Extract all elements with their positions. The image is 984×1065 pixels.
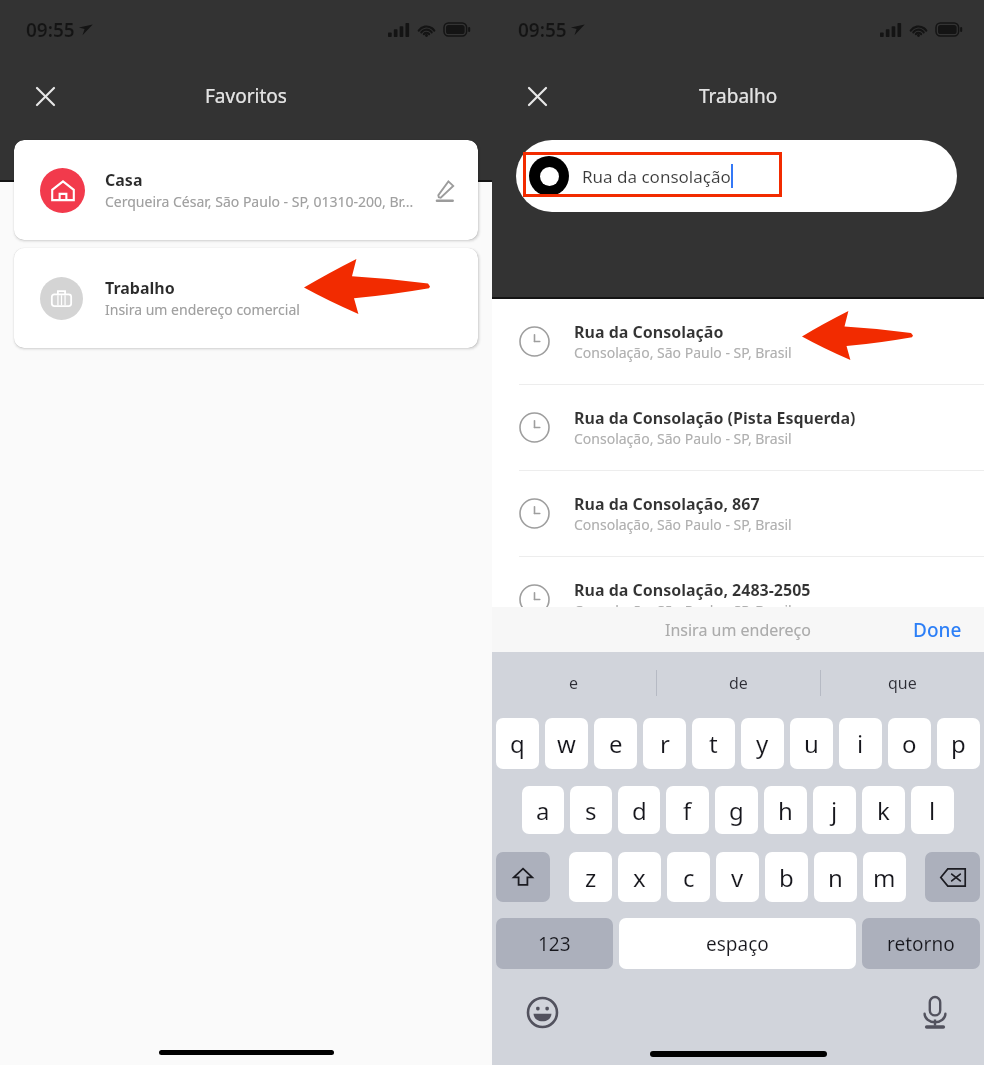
button[interactable]: j — [813, 786, 856, 834]
staticText: k — [877, 794, 890, 827]
staticText: t — [709, 727, 718, 760]
button[interactable]: e — [492, 652, 656, 713]
staticText: 09:55 — [26, 17, 75, 43]
button[interactable]: Emoji — [524, 994, 560, 1030]
button[interactable]: Rua da Consolação, 867 — [519, 471, 970, 556]
button[interactable]: 123 — [496, 918, 613, 969]
staticText: y — [756, 727, 769, 760]
staticText: Rua da consolação — [582, 165, 731, 188]
staticText: i — [857, 727, 864, 760]
button[interactable]: de — [657, 652, 820, 713]
button[interactable]: q — [496, 718, 539, 769]
staticText: u — [804, 727, 819, 760]
staticText: Casa — [105, 169, 143, 191]
staticText: s — [585, 794, 597, 827]
button[interactable]: u — [790, 718, 833, 769]
button[interactable]: w — [545, 718, 588, 769]
staticText: w — [557, 727, 576, 760]
button[interactable]: que — [821, 652, 984, 713]
button[interactable]: r — [643, 718, 686, 769]
staticText: Cerqueira César, São Paulo - SP, 01310-2… — [105, 192, 414, 211]
staticText: Trabalho — [699, 83, 778, 109]
staticText: h — [778, 794, 793, 827]
staticText: z — [585, 861, 597, 894]
button[interactable]: v — [716, 852, 759, 902]
button[interactable]: p — [937, 718, 980, 769]
button[interactable]: g — [715, 786, 758, 834]
button[interactable]: l — [911, 786, 954, 834]
button[interactable]: c — [667, 852, 710, 902]
staticText: Rua da Consolação, 2483-2505 — [574, 579, 811, 601]
button[interactable]: e — [594, 718, 637, 769]
button[interactable]: Rua da Consolação (Pista Esquerda) — [519, 385, 970, 470]
staticText: Consolação, São Paulo - SP, Brasil — [574, 515, 792, 534]
staticText: Insira um endereço — [665, 619, 811, 641]
staticText: Rua da Consolação (Pista Esquerda) — [574, 407, 856, 429]
staticText: retorno — [887, 931, 955, 957]
staticText: j — [831, 794, 838, 827]
button[interactable]: Fechar — [28, 79, 62, 113]
staticText: r — [660, 727, 670, 760]
button[interactable]: y — [741, 718, 784, 769]
staticText: de — [729, 672, 748, 694]
button[interactable]: Rua da Consolação, 2483-2505 — [519, 557, 970, 642]
staticText: q — [510, 727, 525, 760]
button[interactable]: o — [888, 718, 931, 769]
staticText: Rua da Consolação, 867 — [574, 493, 760, 515]
staticText: a — [536, 794, 550, 827]
staticText: o — [902, 727, 917, 760]
staticText: e — [609, 727, 623, 760]
button[interactable]: a — [522, 786, 564, 834]
button[interactable]: f — [666, 786, 709, 834]
staticText: Consolação, São Paulo - SP, Brasil — [574, 429, 792, 448]
staticText: f — [683, 794, 692, 827]
button[interactable]: s — [570, 786, 612, 834]
staticText: n — [828, 861, 843, 894]
button[interactable]: Casa — [14, 140, 478, 240]
button[interactable]: k — [862, 786, 905, 834]
button[interactable]: espaço — [619, 918, 856, 969]
button[interactable]: Apagar — [925, 852, 980, 902]
button[interactable]: Rua da consolação — [516, 140, 957, 212]
staticText: que — [888, 672, 917, 694]
button[interactable]: h — [764, 786, 807, 834]
staticText: c — [683, 861, 695, 894]
staticText: Rua da Consolação — [574, 321, 724, 343]
staticText: b — [779, 861, 794, 894]
button[interactable]: i — [839, 718, 882, 769]
staticText: g — [729, 794, 744, 827]
staticText: Trabalho — [105, 277, 175, 299]
button[interactable]: Shift — [496, 852, 550, 902]
staticText: Consolação, São Paulo - SP, Brasil — [574, 343, 792, 362]
staticText: x — [633, 861, 646, 894]
button[interactable]: Editar — [430, 174, 462, 206]
staticText: Insira um endereço comercial — [105, 300, 300, 319]
staticText: Done — [913, 617, 962, 643]
button[interactable]: Trabalho — [14, 248, 478, 348]
staticText: 123 — [538, 931, 571, 957]
staticText: l — [929, 794, 936, 827]
button[interactable]: m — [863, 852, 906, 902]
staticText: 09:55 — [518, 17, 567, 43]
staticText: m — [873, 861, 896, 894]
button[interactable]: z — [569, 852, 612, 902]
staticText: e — [569, 672, 579, 694]
staticText: Consolação, São Paulo - SP, Brasil — [574, 601, 792, 620]
button[interactable]: retorno — [862, 918, 980, 969]
button[interactable]: Done — [913, 617, 962, 643]
staticText: v — [731, 861, 744, 894]
button[interactable]: Microfone — [917, 994, 953, 1030]
staticText: espaço — [706, 931, 769, 957]
staticText: p — [951, 727, 966, 760]
button[interactable]: n — [814, 852, 857, 902]
button[interactable]: Rua da Consolação — [519, 299, 970, 384]
staticText: Favoritos — [205, 83, 287, 109]
button[interactable]: b — [765, 852, 808, 902]
button[interactable]: d — [618, 786, 660, 834]
button[interactable]: x — [618, 852, 661, 902]
staticText: d — [632, 794, 647, 827]
button[interactable]: t — [692, 718, 735, 769]
button[interactable]: Fechar — [520, 79, 554, 113]
